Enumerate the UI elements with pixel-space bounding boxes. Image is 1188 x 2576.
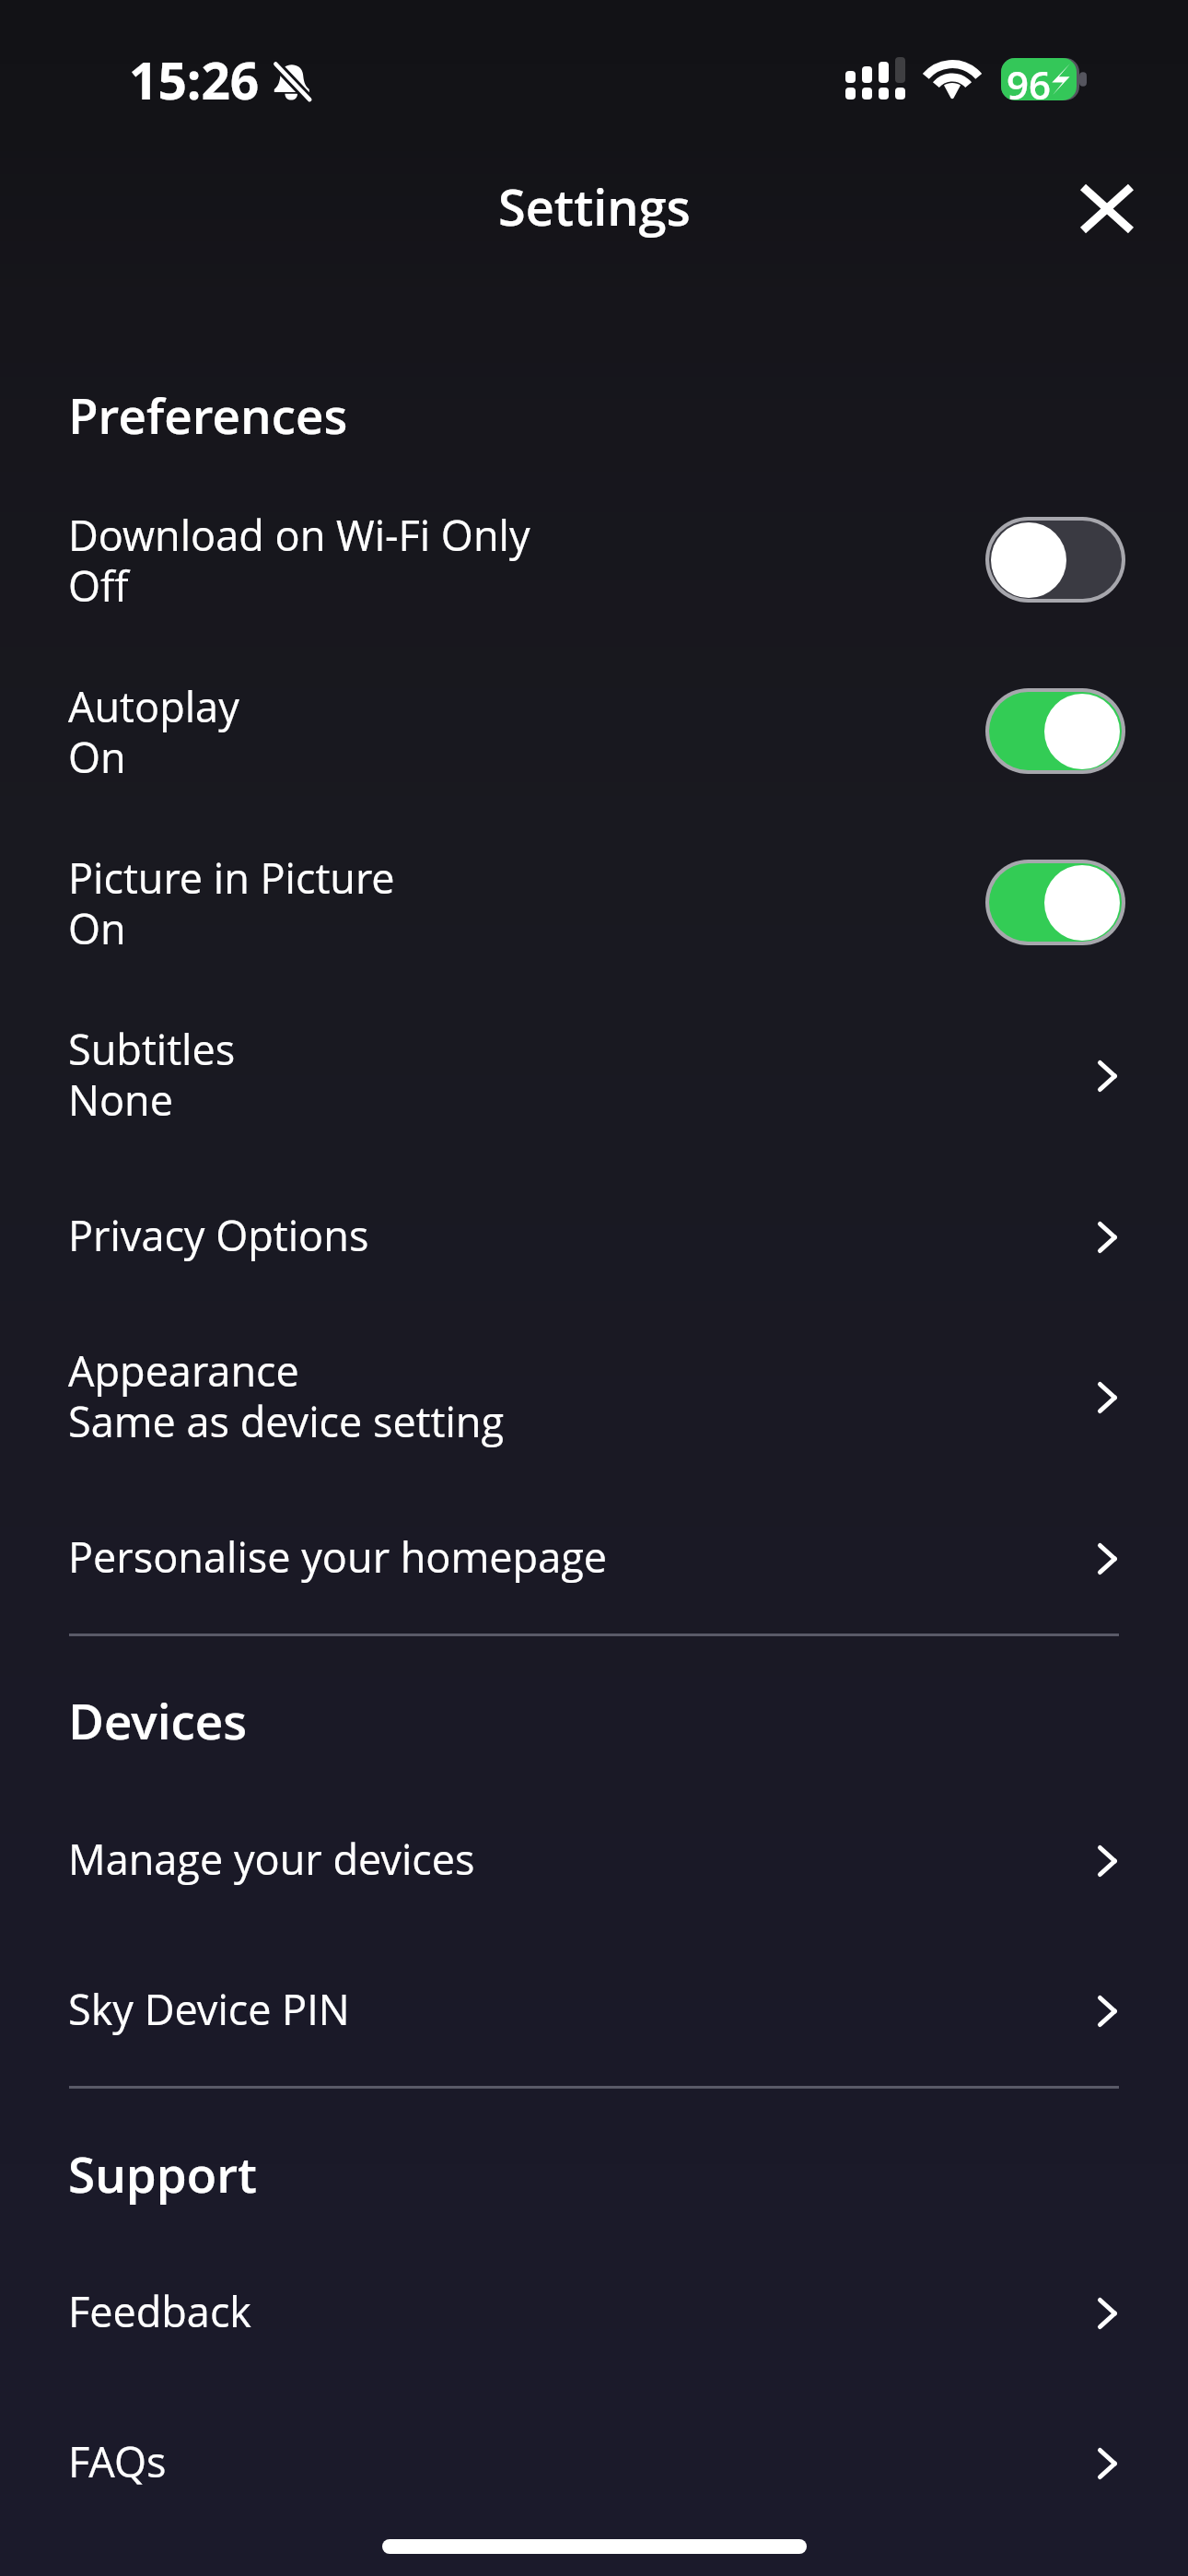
button[interactable]: Download on Wi-Fi Only Off: [0, 476, 1188, 648]
staticText: Autoplay On: [68, 683, 239, 784]
staticText: Preferences: [68, 381, 348, 448]
button[interactable]: FAQs: [0, 2388, 1188, 2538]
button[interactable]: Close: [1066, 166, 1147, 247]
button[interactable]: Personalise your homepage: [0, 1483, 1188, 1633]
staticText: Manage your devices: [68, 1835, 475, 1886]
staticText: Sky Device PIN: [68, 1985, 350, 2036]
button[interactable]: Sky Device PIN: [0, 1936, 1188, 2086]
button[interactable]: On: [985, 860, 1125, 945]
button[interactable]: Appearance Same as device setting: [0, 1312, 1188, 1483]
button[interactable]: Manage your devices: [0, 1786, 1188, 1936]
staticText: Devices: [68, 1687, 248, 1753]
staticText: Appearance Same as device setting: [68, 1347, 505, 1448]
button[interactable]: Autoplay On: [0, 648, 1188, 819]
staticText: Personalise your homepage: [68, 1533, 608, 1584]
staticText: 96: [1007, 58, 1051, 100]
staticText: Download on Wi-Fi Only Off: [68, 511, 530, 613]
button[interactable]: Subtitles None: [0, 990, 1188, 1162]
button[interactable]: On: [985, 688, 1125, 774]
staticText: Support: [68, 2140, 257, 2207]
button[interactable]: Privacy Options: [0, 1162, 1188, 1312]
button[interactable]: Feedback: [0, 2238, 1188, 2388]
staticText: Picture in Picture On: [68, 854, 395, 955]
button[interactable]: Picture in Picture On: [0, 819, 1188, 990]
staticText: Subtitles None: [68, 1025, 236, 1127]
staticText: 15:26: [129, 45, 260, 114]
staticText: Feedback: [68, 2288, 251, 2338]
button[interactable]: Off: [985, 517, 1125, 603]
staticText: Privacy Options: [68, 1212, 369, 1262]
staticText: FAQs: [68, 2438, 167, 2488]
staticText: Settings: [498, 172, 691, 240]
